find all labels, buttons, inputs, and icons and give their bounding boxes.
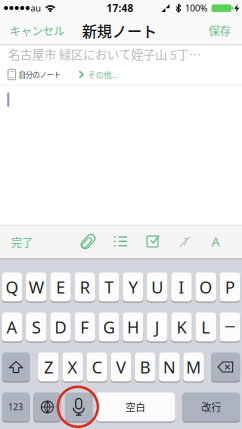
button[interactable]: リスト [107, 225, 133, 257]
button[interactable]: 次のキーボード [33, 392, 61, 422]
staticText: I [178, 276, 184, 298]
button[interactable]: P [220, 272, 240, 302]
staticText: O [199, 276, 212, 298]
button[interactable]: R [74, 272, 95, 302]
button[interactable]: Q [2, 272, 22, 302]
button[interactable]: A [2, 312, 22, 342]
staticText: L [201, 316, 210, 338]
staticText: 完了 [11, 234, 33, 250]
staticText: Q [6, 276, 19, 298]
button[interactable]: 空白 [96, 392, 175, 422]
button[interactable]: テキストスタイル [202, 225, 228, 257]
staticText: R [80, 276, 90, 298]
button[interactable]: 書式 [171, 226, 197, 258]
button[interactable]: 123 [2, 392, 29, 422]
button[interactable]: K [171, 312, 192, 342]
staticText: 空白 [125, 400, 145, 414]
button[interactable]: Z [38, 352, 59, 382]
button[interactable]: 音声入力 [65, 392, 92, 422]
staticText: M [186, 356, 201, 378]
button[interactable]: キャンセル [4, 16, 70, 44]
staticText: E [56, 276, 65, 298]
staticText: N [163, 356, 176, 378]
button[interactable]: W [26, 272, 47, 302]
button[interactable]: T [99, 272, 119, 302]
button[interactable]: O [195, 272, 216, 302]
staticText: キャンセル [9, 22, 64, 39]
staticText: Z [44, 356, 53, 378]
button[interactable]: C [86, 352, 107, 382]
staticText: J [155, 316, 160, 338]
staticText: P [225, 276, 235, 298]
staticText: A [211, 233, 219, 250]
staticText: X [68, 356, 78, 378]
button[interactable]: F [74, 312, 95, 342]
staticText: H [127, 316, 139, 338]
button[interactable]: シフト [2, 352, 30, 382]
staticText: ー [224, 318, 236, 336]
staticText: 自分のノート [19, 69, 61, 80]
staticText: F [80, 316, 89, 338]
staticText: au [30, 2, 40, 14]
button[interactable]: V [111, 352, 131, 382]
button[interactable]: ー [220, 312, 240, 342]
button[interactable]: 改行 [183, 392, 240, 422]
staticText: 保存 [208, 22, 230, 39]
staticText: 名古屋市 緑区において姪子山 5丁… [8, 46, 201, 63]
staticText: K [176, 316, 186, 338]
button[interactable]: Y [123, 272, 143, 302]
button[interactable]: B [135, 352, 155, 382]
staticText: その他... [88, 69, 118, 80]
button[interactable]: U [147, 272, 168, 302]
button[interactable]: E [50, 272, 71, 302]
staticText: U [151, 276, 163, 298]
staticText: D [54, 316, 66, 338]
button[interactable]: L [195, 312, 216, 342]
button[interactable]: S [26, 312, 47, 342]
staticText: 17:48 [106, 1, 133, 15]
button[interactable]: 完了 [2, 226, 42, 258]
button[interactable]: X [62, 352, 83, 382]
staticText: C [92, 356, 102, 378]
staticText: S [32, 316, 41, 338]
button[interactable]: チェックボックス [139, 225, 165, 257]
staticText: 新規ノート [82, 20, 157, 41]
button[interactable]: 削除 [211, 352, 240, 382]
button[interactable]: M [183, 352, 204, 382]
staticText: B [140, 356, 151, 378]
staticText: A [7, 316, 18, 338]
button[interactable]: N [159, 352, 180, 382]
button[interactable]: G [99, 312, 119, 342]
staticText: Y [129, 276, 138, 298]
button[interactable]: J [147, 312, 168, 342]
staticText: V [116, 356, 126, 378]
button[interactable]: 保存 [200, 16, 238, 44]
button[interactable]: I [171, 272, 192, 302]
staticText: W [29, 276, 44, 298]
staticText: T [104, 276, 113, 298]
button[interactable]: H [123, 312, 143, 342]
button[interactable]: 自分のノート [0, 64, 242, 84]
staticText: G [103, 316, 115, 338]
button[interactable]: D [50, 312, 71, 342]
staticText: 123 [8, 401, 23, 413]
staticText: 100% [185, 2, 208, 14]
staticText: 改行 [201, 400, 221, 414]
button[interactable]: 添付 [75, 225, 101, 257]
staticText: T [183, 234, 188, 249]
